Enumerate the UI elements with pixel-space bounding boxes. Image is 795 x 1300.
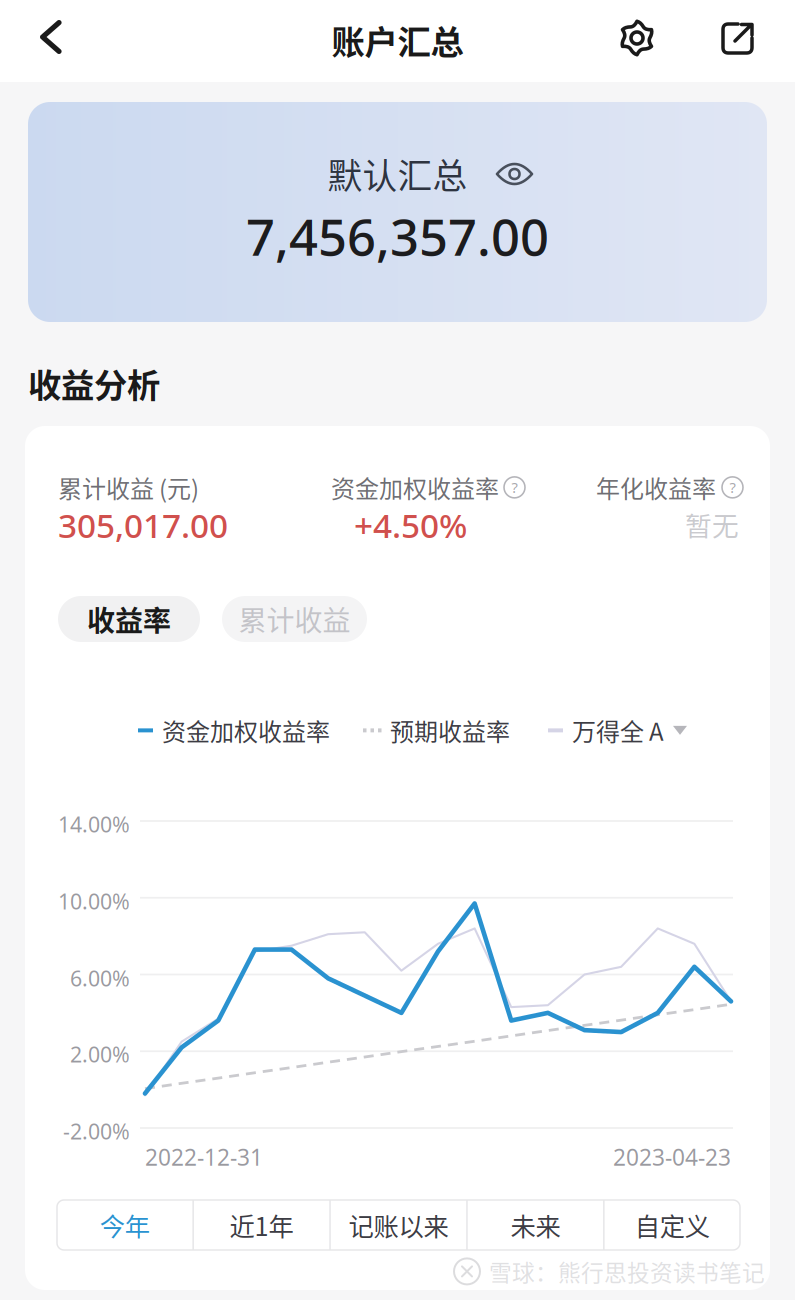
staticText: 10.00%	[58, 887, 130, 915]
staticText: 收益率	[87, 599, 171, 639]
staticText: 收益分析	[28, 359, 160, 407]
button[interactable]: 近1年	[194, 1200, 329, 1250]
button[interactable]: 收益率	[58, 596, 200, 642]
staticText: 记账以来	[348, 1207, 448, 1243]
staticText: 305,017.00	[58, 503, 228, 547]
staticText: 2023-04-23	[613, 1142, 731, 1172]
staticText: 近1年	[230, 1207, 294, 1243]
button[interactable]: 万得全 A	[548, 713, 687, 748]
staticText: 暂无	[685, 505, 739, 544]
staticText: 自定义	[635, 1207, 710, 1243]
button[interactable]: 自定义	[605, 1200, 740, 1250]
staticText: 万得全 A	[572, 713, 664, 748]
button[interactable]: Toggle balance visibility	[495, 161, 534, 187]
staticText: 默认汇总	[327, 149, 467, 199]
staticText: 7,456,357.00	[246, 202, 549, 270]
staticText: 资金加权收益率	[331, 470, 499, 505]
button[interactable]: Share	[714, 15, 761, 62]
staticText: 年化收益率	[596, 470, 716, 505]
staticText: 2022-12-31	[145, 1142, 263, 1172]
staticText: 2.00%	[70, 1040, 130, 1068]
staticText: -2.00%	[63, 1117, 130, 1145]
staticText: 资金加权收益率	[162, 713, 330, 748]
staticText: 累计收益 (元)	[58, 470, 199, 505]
staticText: 累计收益	[238, 599, 350, 639]
staticText: 未来	[510, 1207, 560, 1243]
staticText: +4.50%	[354, 503, 467, 547]
staticText: 6.00%	[70, 964, 130, 992]
staticText: 预期收益率	[390, 713, 510, 748]
button[interactable]: Back	[28, 10, 74, 64]
staticText: ?	[511, 478, 517, 497]
staticText: 账户汇总	[331, 16, 463, 64]
staticText: 雪球：熊行思投资读书笔记	[489, 1255, 765, 1288]
staticText: 14.00%	[58, 810, 130, 838]
button[interactable]: 未来	[468, 1200, 603, 1250]
button[interactable]: 记账以来	[331, 1200, 466, 1250]
button[interactable]: 累计收益	[222, 596, 367, 642]
staticText: 今年	[100, 1207, 150, 1243]
button[interactable]: Settings	[612, 13, 662, 63]
button[interactable]: 今年	[57, 1200, 192, 1250]
staticText: ?	[729, 478, 735, 497]
